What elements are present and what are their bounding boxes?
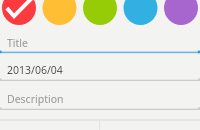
button[interactable]: Description — [0, 91, 200, 109]
button[interactable]: Title — [0, 35, 200, 52]
button[interactable]: 2013/06/04 — [0, 62, 200, 80]
button[interactable]: Colour swatch 3 — [82, 0, 116, 25]
staticText: 2013/06/04 — [7, 63, 63, 77]
staticText: Title — [7, 36, 28, 50]
button[interactable]: Done — [100, 120, 200, 130]
button[interactable]: Colour swatch 1 — [0, 0, 34, 25]
button[interactable]: Colour swatch 4 — [123, 0, 157, 25]
button[interactable]: Colour swatch 2 — [41, 0, 75, 25]
button[interactable]: Cancel — [0, 120, 100, 130]
staticText: Description — [7, 92, 64, 106]
button[interactable]: Colour swatch 5 — [164, 0, 198, 25]
